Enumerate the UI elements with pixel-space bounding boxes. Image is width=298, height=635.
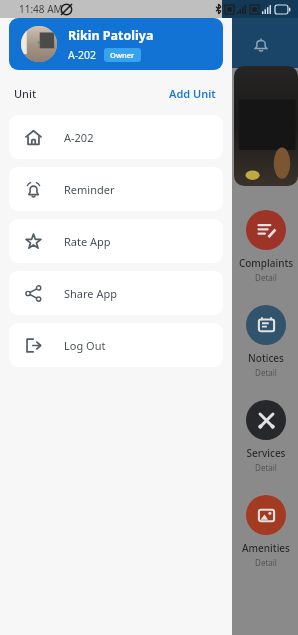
staticText: Rikin Patoliya <box>68 27 154 44</box>
button[interactable]: Log Out <box>9 323 223 367</box>
button[interactable]: Add Unit <box>167 84 218 103</box>
button[interactable]: Services <box>236 400 296 473</box>
staticText: Detail <box>236 462 296 473</box>
staticText: 11:48 AM <box>19 2 63 16</box>
button[interactable]: Amenities <box>236 495 296 568</box>
staticText: Amenities <box>236 541 296 555</box>
staticText: Detail <box>236 367 296 378</box>
button[interactable]: A-202 <box>9 115 223 159</box>
staticText: Owner <box>110 50 135 60</box>
staticText: Services <box>236 446 296 460</box>
staticText: Detail <box>236 272 296 283</box>
staticText: Detail <box>236 557 296 568</box>
staticText: Log Out <box>64 338 106 353</box>
staticText: Add Unit <box>169 86 216 101</box>
button[interactable]: Notices <box>236 305 296 378</box>
button[interactable]: Complaints <box>236 210 296 283</box>
button[interactable]: Share App <box>9 271 223 315</box>
staticText: Share App <box>64 286 117 301</box>
button[interactable]: Reminder <box>9 167 223 211</box>
button[interactable]: Rate App <box>9 219 223 263</box>
staticText: Complaints <box>236 256 296 270</box>
staticText: A-202 <box>64 130 94 145</box>
staticText: Reminder <box>64 182 115 197</box>
button[interactable]: Rikin Patoliya <box>9 18 223 70</box>
staticText: A-202 <box>68 48 97 62</box>
staticText: Rate App <box>64 234 111 249</box>
staticText: Unit <box>14 86 37 101</box>
staticText: Notices <box>236 351 296 365</box>
button[interactable] <box>234 66 298 186</box>
button[interactable]: Notifications <box>250 34 272 56</box>
